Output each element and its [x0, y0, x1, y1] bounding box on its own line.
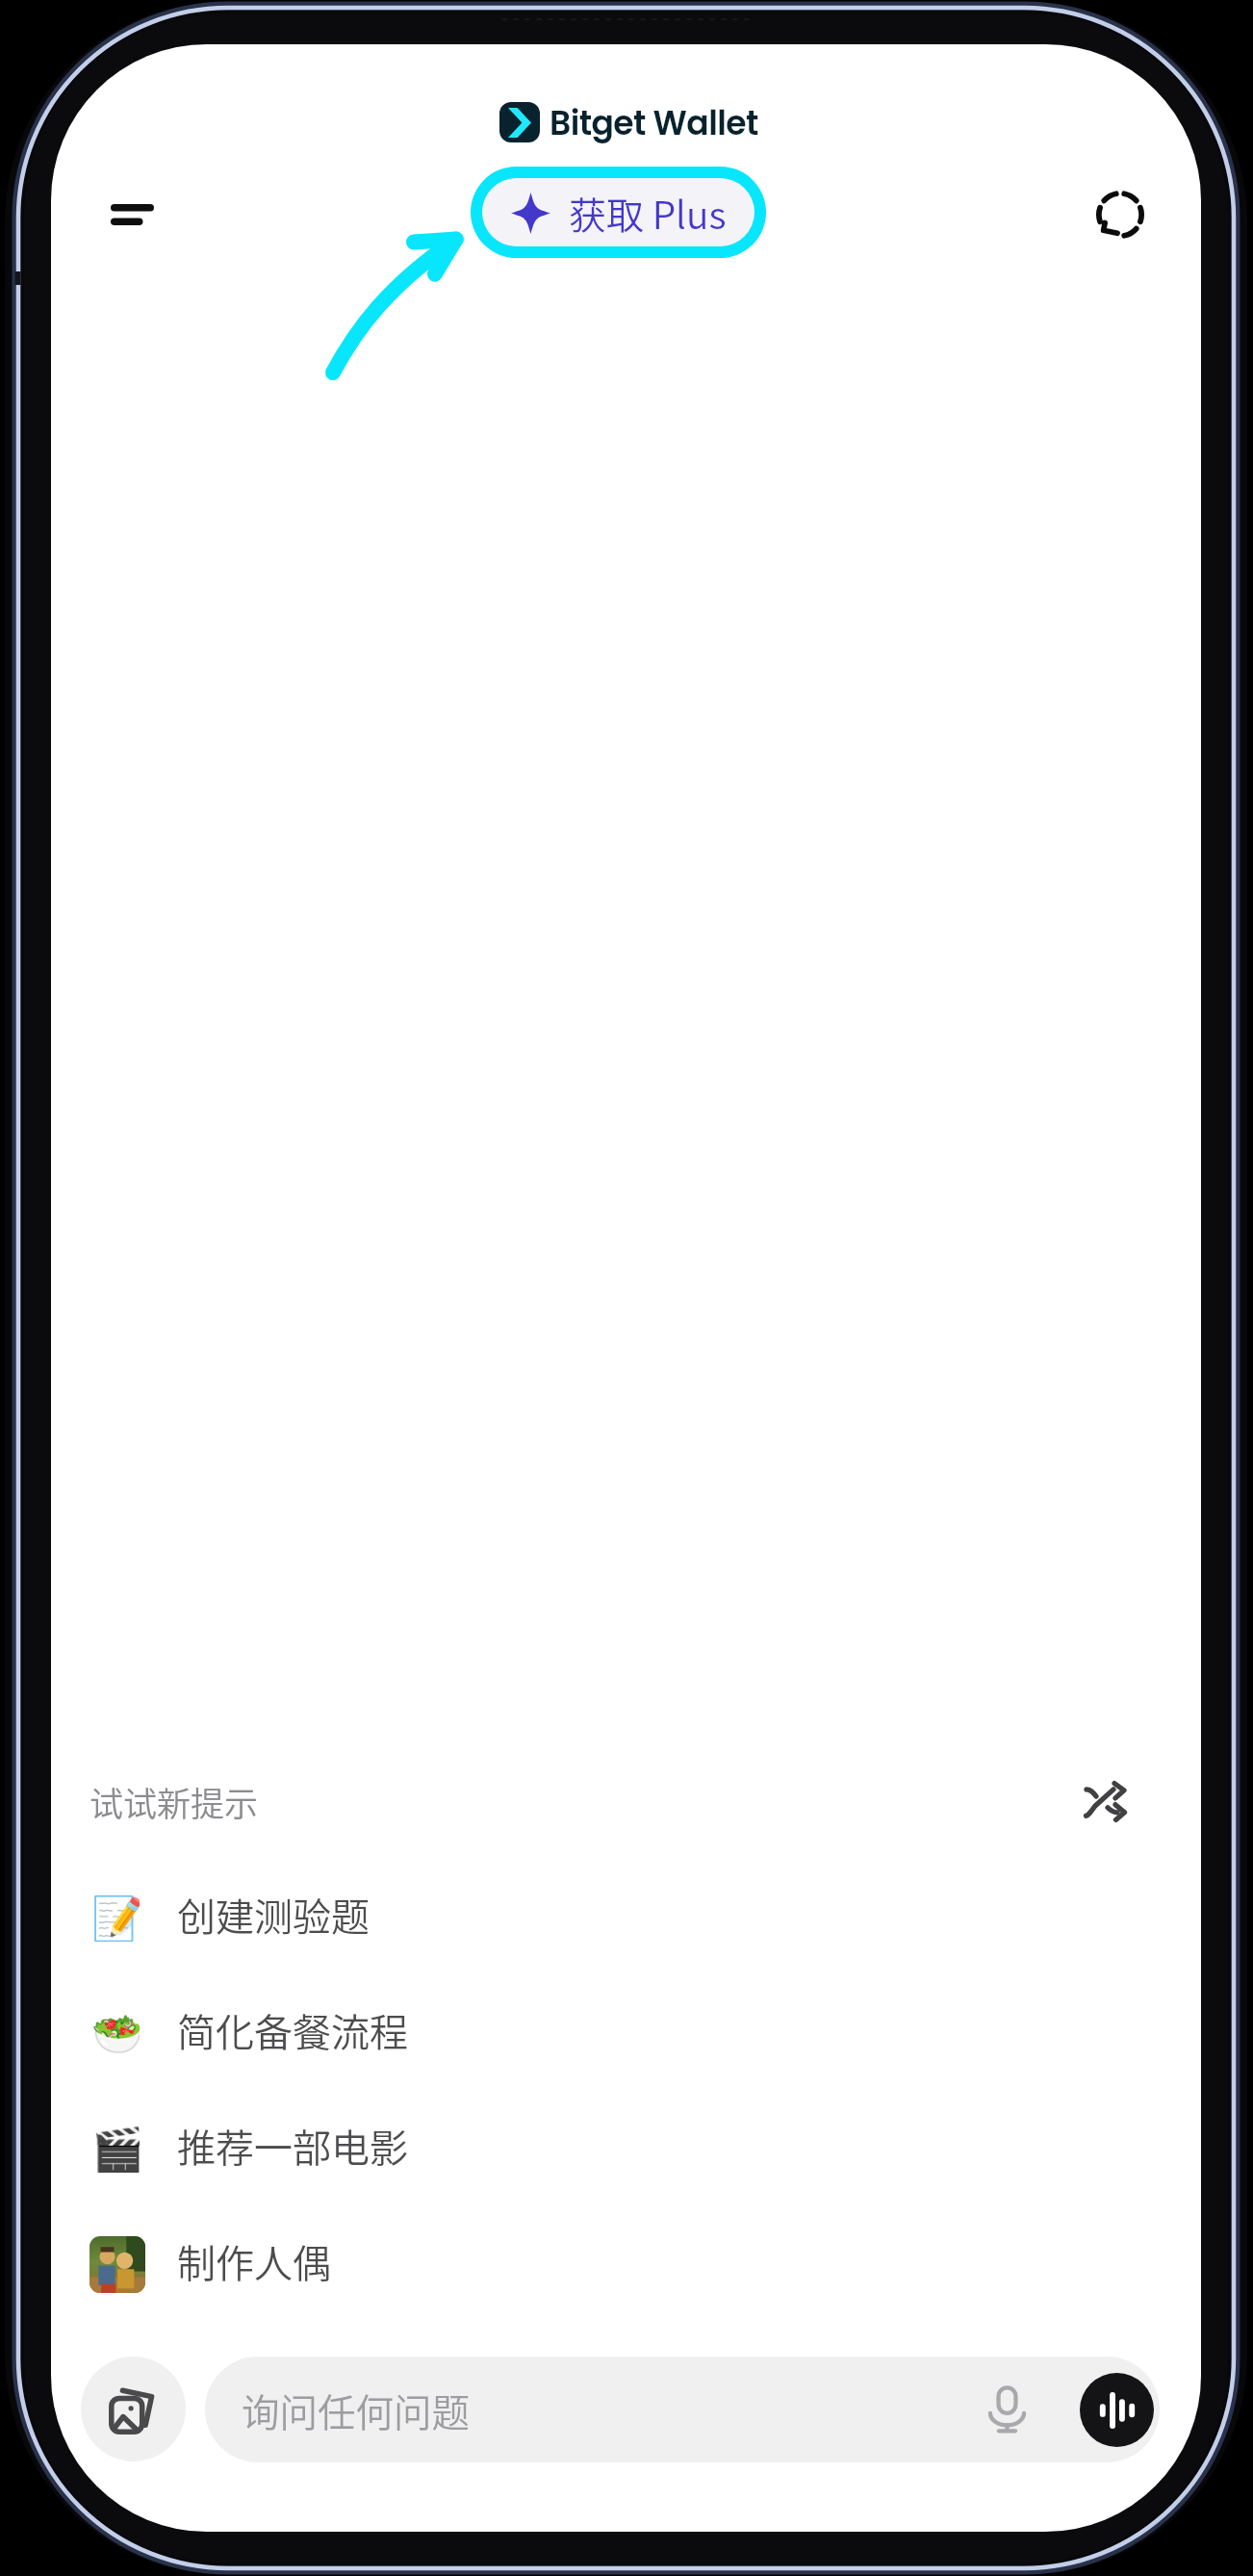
- button[interactable]: Shuffle suggestions: [1070, 1765, 1141, 1837]
- button[interactable]: 制作人偶: [51, 2208, 1201, 2320]
- staticText: 获取 Plus: [569, 186, 727, 240]
- staticText: 制作人偶: [177, 2233, 331, 2289]
- staticText: 📝: [91, 1893, 140, 1942]
- button[interactable]: 🎬: [51, 2093, 1201, 2204]
- staticText: 🎬: [91, 2125, 140, 2173]
- staticText: 试试新提示: [89, 1777, 259, 1826]
- button[interactable]: 获取 Plus: [482, 178, 754, 246]
- button[interactable]: Voice mode: [1080, 2373, 1154, 2447]
- button[interactable]: Temporary chat: [1084, 178, 1157, 251]
- button[interactable]: 询问任何问题: [205, 2357, 1160, 2462]
- button[interactable]: Dictate: [974, 2377, 1039, 2442]
- button[interactable]: Add image: [81, 2357, 186, 2461]
- staticText: 创建测验题: [177, 1887, 370, 1943]
- button[interactable]: 📝: [51, 1862, 1201, 1973]
- staticText: 简化备餐流程: [177, 2002, 408, 2058]
- staticText: 🥗: [91, 2009, 140, 2057]
- button[interactable]: Menu: [95, 178, 168, 251]
- staticText: Bitget Wallet: [550, 100, 758, 146]
- button[interactable]: 🥗: [51, 1977, 1201, 2089]
- staticText: 推荐一部电影: [177, 2118, 408, 2174]
- staticText: 询问任何问题: [242, 2383, 470, 2437]
